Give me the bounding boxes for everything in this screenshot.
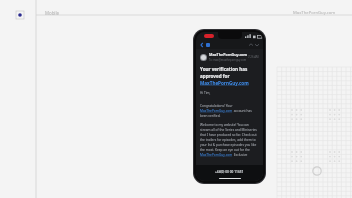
staticText: Exclusive [233, 153, 248, 157]
staticText: the trailers for episodes, add them to [200, 138, 256, 142]
staticText: MaxThePornGuy.com [200, 109, 233, 113]
button[interactable]: MaxThePornGuy.com [200, 109, 233, 113]
staticText: Welcome to my website! You can [200, 123, 249, 127]
button[interactable]: Reply [236, 174, 241, 179]
staticText: approved for [200, 73, 230, 79]
button[interactable]: Next message [255, 43, 259, 47]
staticText: stream all of the Series and Miniseries [200, 128, 257, 132]
button[interactable]: MaxThePornGuy.com [200, 80, 249, 86]
staticText: MaxThePornGuy.com [200, 153, 233, 157]
staticText: that I have produced so far. Check out [200, 133, 257, 137]
staticText: your list & purchase episodes you like [200, 143, 257, 147]
button[interactable]: Back [200, 43, 204, 47]
button[interactable]: Move to folder [218, 174, 223, 179]
staticText: been verified. [200, 114, 221, 118]
button[interactable]: Sender avatar [200, 54, 207, 61]
staticText: Hi Tim, [200, 91, 211, 95]
staticText: Mobile [45, 10, 60, 16]
staticText: account has [233, 109, 252, 113]
staticText: MaxThePornGuy.com [200, 80, 249, 86]
button[interactable]: MaxThePornGuy.com [200, 153, 233, 157]
staticText: 7:26 AM [248, 55, 259, 59]
button[interactable]: Inbox [206, 43, 210, 47]
staticText: the most. Keep an eye out for the [200, 148, 250, 152]
staticText: +44(0) 00 00 11651 [215, 170, 244, 174]
staticText: MaxThePornGuy.com [209, 52, 248, 57]
staticText: Your verification has been [200, 66, 259, 72]
button[interactable]: Previous message [249, 43, 253, 47]
staticText: MaxThePornGuy.com [293, 10, 336, 16]
staticText: To: max@maxthepornguy.com > [209, 58, 248, 62]
staticText: Congratulations! Your [200, 104, 233, 108]
